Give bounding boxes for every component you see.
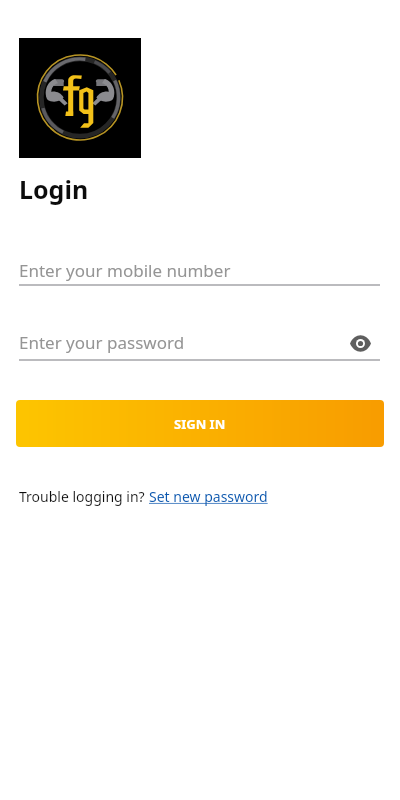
staticText: Login: [19, 172, 89, 206]
staticText: Enter your password: [19, 331, 185, 354]
button[interactable]: Enter your password: [19, 328, 380, 361]
staticText: SIGN IN: [174, 415, 226, 433]
button[interactable]: Show password: [345, 328, 375, 358]
staticText: Enter your mobile number: [19, 259, 231, 282]
button[interactable]: Enter your mobile number: [19, 253, 380, 286]
button[interactable]: SIGN IN: [16, 400, 384, 447]
staticText: Trouble logging in?: [19, 487, 149, 506]
button[interactable]: Set new password: [149, 487, 268, 506]
